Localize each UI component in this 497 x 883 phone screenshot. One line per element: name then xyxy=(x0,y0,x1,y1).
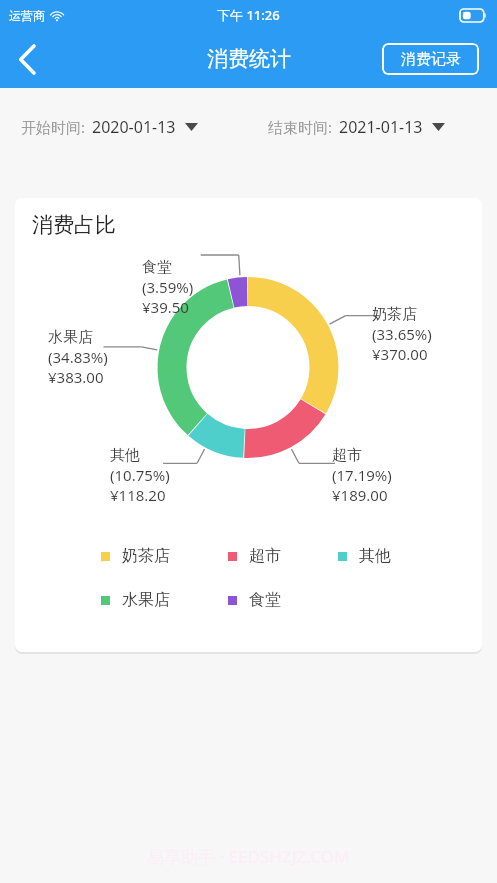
staticText: 食堂 xyxy=(249,590,281,610)
staticText: 奶茶店 xyxy=(372,305,417,324)
staticText: ¥370.00 xyxy=(372,344,428,364)
staticText: 其他 xyxy=(110,446,140,465)
staticText: 2020-01-13 xyxy=(92,116,176,138)
staticText: (33.65%) xyxy=(372,324,432,344)
button[interactable]: 超市 xyxy=(228,546,338,566)
staticText: 开始时间: xyxy=(21,117,86,137)
staticText: 消费占比 xyxy=(32,212,116,238)
staticText: (10.75%) xyxy=(110,465,170,485)
staticText: 超市 xyxy=(249,546,281,566)
staticText: 超市 xyxy=(332,446,362,465)
button[interactable]: 其他 xyxy=(338,546,438,566)
button[interactable]: 开始时间: xyxy=(21,116,198,138)
staticText: 结束时间: xyxy=(268,117,333,137)
staticText: ¥189.00 xyxy=(332,485,388,505)
staticText: ¥383.00 xyxy=(48,367,104,387)
staticText: (17.19%) xyxy=(332,465,392,485)
staticText: 2021-01-13 xyxy=(339,116,423,138)
staticText: ¥118.20 xyxy=(110,485,166,505)
staticText: 其他 xyxy=(359,546,391,566)
staticText: (3.59%) xyxy=(142,277,194,297)
staticText: 易享助手 · EEDSHZJZ.COM xyxy=(147,845,350,868)
staticText: 下午 11:26 xyxy=(217,6,280,24)
staticText: (34.83%) xyxy=(48,347,108,367)
button[interactable]: 食堂 xyxy=(228,590,338,610)
staticText: ¥39.50 xyxy=(142,297,189,317)
button[interactable]: 奶茶店 xyxy=(101,546,228,566)
button[interactable]: 水果店 xyxy=(101,590,228,610)
staticText: 奶茶店 xyxy=(122,546,170,566)
staticText: 消费统计 xyxy=(207,46,291,72)
staticText: 水果店 xyxy=(48,328,93,347)
staticText: 消费记录 xyxy=(401,50,461,69)
button[interactable]: 结束时间: xyxy=(268,116,445,138)
staticText: 水果店 xyxy=(122,590,170,610)
staticText: 运营商 xyxy=(9,8,45,23)
staticText: 食堂 xyxy=(142,258,172,277)
button[interactable]: 返回 xyxy=(0,30,54,88)
button[interactable]: 消费记录 xyxy=(382,43,479,75)
